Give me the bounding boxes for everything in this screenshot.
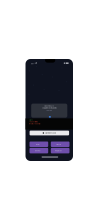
staticText: Sign Up bbox=[56, 143, 61, 145]
staticText: to sign in to this demo bbox=[42, 107, 57, 109]
staticText: Register bbox=[55, 150, 62, 152]
button[interactable]: Sign Up bbox=[51, 141, 69, 147]
staticText: request failed bbox=[29, 121, 38, 123]
staticText: Welcome back bbox=[44, 105, 54, 107]
staticText: Sign In bbox=[35, 143, 39, 145]
staticText: status: idle bbox=[46, 109, 52, 111]
staticText: Revoke bbox=[34, 150, 40, 152]
staticText: 9:41 bbox=[31, 63, 34, 65]
button[interactable]: Register bbox=[51, 148, 69, 153]
button[interactable]: Sign in with Apple bbox=[30, 131, 69, 135]
staticText: start bbox=[29, 119, 32, 121]
staticText: Sign in with Apple bbox=[45, 132, 56, 134]
staticText: invalid credential bbox=[29, 123, 40, 125]
button[interactable]: Sign In bbox=[29, 141, 48, 147]
button[interactable]: Revoke bbox=[29, 148, 48, 153]
